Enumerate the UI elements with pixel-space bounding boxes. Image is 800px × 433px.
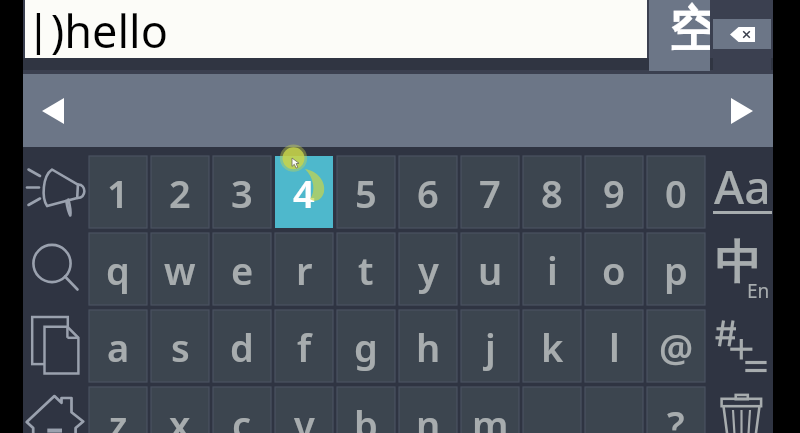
button[interactable]: u bbox=[461, 233, 519, 305]
button[interactable]: l bbox=[585, 310, 643, 382]
button[interactable]: i bbox=[523, 233, 581, 305]
button[interactable]: h bbox=[399, 310, 457, 382]
button[interactable]: b bbox=[337, 387, 395, 433]
staticText: Aa bbox=[714, 155, 771, 218]
button[interactable]: p bbox=[647, 233, 705, 305]
staticText: t bbox=[358, 244, 374, 296]
staticText: f bbox=[297, 321, 312, 373]
button[interactable]: c bbox=[213, 387, 271, 433]
staticText: o bbox=[602, 244, 626, 296]
button[interactable]: ? bbox=[647, 387, 705, 433]
button[interactable]: j bbox=[461, 310, 519, 382]
other: Delete all bbox=[712, 387, 773, 433]
button[interactable]: Symbols bbox=[712, 310, 773, 382]
other: Symbols bbox=[712, 310, 773, 382]
staticText: 3 bbox=[231, 167, 253, 219]
button[interactable]: |)hello bbox=[25, 0, 647, 58]
staticText: s bbox=[171, 321, 190, 373]
button[interactable]: t bbox=[337, 233, 395, 305]
other: Home bbox=[23, 387, 88, 433]
button[interactable]: 3 bbox=[213, 156, 271, 228]
staticText: u bbox=[478, 244, 503, 296]
staticText: g bbox=[354, 321, 378, 373]
button[interactable]: s bbox=[151, 310, 209, 382]
button[interactable]: 4 bbox=[275, 156, 333, 228]
button[interactable]: a bbox=[89, 310, 147, 382]
other: Announcements bbox=[23, 156, 88, 228]
button[interactable]: 1 bbox=[89, 156, 147, 228]
staticText: 9 bbox=[603, 167, 625, 219]
staticText: y bbox=[418, 244, 439, 296]
button[interactable]: 8 bbox=[523, 156, 581, 228]
staticText: h bbox=[416, 321, 441, 373]
button[interactable]: f bbox=[275, 310, 333, 382]
staticText: p bbox=[664, 244, 688, 296]
button[interactable]: Backspace bbox=[713, 0, 771, 71]
button[interactable]: m bbox=[461, 387, 519, 433]
staticText: l bbox=[609, 321, 620, 373]
staticText: q bbox=[106, 244, 130, 296]
button[interactable]: o bbox=[585, 233, 643, 305]
button[interactable]: d bbox=[213, 310, 271, 382]
button[interactable]: 2 bbox=[151, 156, 209, 228]
button[interactable]: v bbox=[275, 387, 333, 433]
button[interactable]: Search bbox=[23, 233, 88, 305]
button[interactable]: Announcements bbox=[23, 156, 88, 228]
button[interactable]: x bbox=[151, 387, 209, 433]
button[interactable]: Aa bbox=[712, 156, 773, 228]
button[interactable]: @ bbox=[647, 310, 705, 382]
button[interactable]: 9 bbox=[585, 156, 643, 228]
staticText: 0 bbox=[665, 167, 687, 219]
staticText: m bbox=[472, 398, 509, 433]
other: Search bbox=[23, 233, 88, 305]
button[interactable]: 5 bbox=[337, 156, 395, 228]
staticText: a bbox=[107, 321, 130, 373]
button[interactable]: Next candidates bbox=[718, 87, 766, 135]
button[interactable]: 7 bbox=[461, 156, 519, 228]
staticText: r bbox=[296, 244, 313, 296]
button[interactable]: n bbox=[399, 387, 457, 433]
button[interactable]: 0 bbox=[647, 156, 705, 228]
staticText: 7 bbox=[479, 167, 501, 219]
button[interactable]: z bbox=[89, 387, 147, 433]
staticText: v bbox=[294, 398, 315, 433]
staticText: En bbox=[747, 278, 770, 304]
button[interactable]: k bbox=[523, 310, 581, 382]
button[interactable]: g bbox=[337, 310, 395, 382]
button[interactable]: Previous candidates bbox=[29, 87, 77, 135]
button[interactable]: 空 bbox=[649, 0, 710, 71]
button[interactable]: q bbox=[89, 233, 147, 305]
other: Clipboard bbox=[23, 310, 88, 382]
staticText: 6 bbox=[417, 167, 439, 219]
button[interactable]: Home bbox=[23, 387, 88, 433]
staticText: n bbox=[416, 398, 441, 433]
staticText: 4 bbox=[293, 167, 315, 219]
staticText: w bbox=[164, 244, 196, 296]
staticText: ? bbox=[667, 398, 685, 433]
staticText: d bbox=[230, 321, 254, 373]
button[interactable]: 6 bbox=[399, 156, 457, 228]
staticText: e bbox=[231, 244, 254, 296]
button[interactable]: r bbox=[275, 233, 333, 305]
staticText: x bbox=[169, 398, 191, 433]
button[interactable]: Clipboard bbox=[23, 310, 88, 382]
staticText: j bbox=[485, 321, 496, 373]
button[interactable]: y bbox=[399, 233, 457, 305]
button[interactable]: Delete all bbox=[712, 387, 773, 433]
button[interactable]: 中 bbox=[712, 233, 773, 305]
staticText: 5 bbox=[355, 167, 377, 219]
staticText: c bbox=[232, 398, 252, 433]
button[interactable]: w bbox=[151, 233, 209, 305]
staticText: |)hello bbox=[26, 0, 168, 55]
staticText: k bbox=[541, 321, 564, 373]
staticText: i bbox=[547, 244, 558, 296]
staticText: b bbox=[354, 398, 378, 433]
staticText: 中 bbox=[715, 234, 761, 292]
staticText: 1 bbox=[107, 167, 129, 219]
button[interactable]: e bbox=[213, 233, 271, 305]
staticText: 空 bbox=[669, 0, 710, 61]
